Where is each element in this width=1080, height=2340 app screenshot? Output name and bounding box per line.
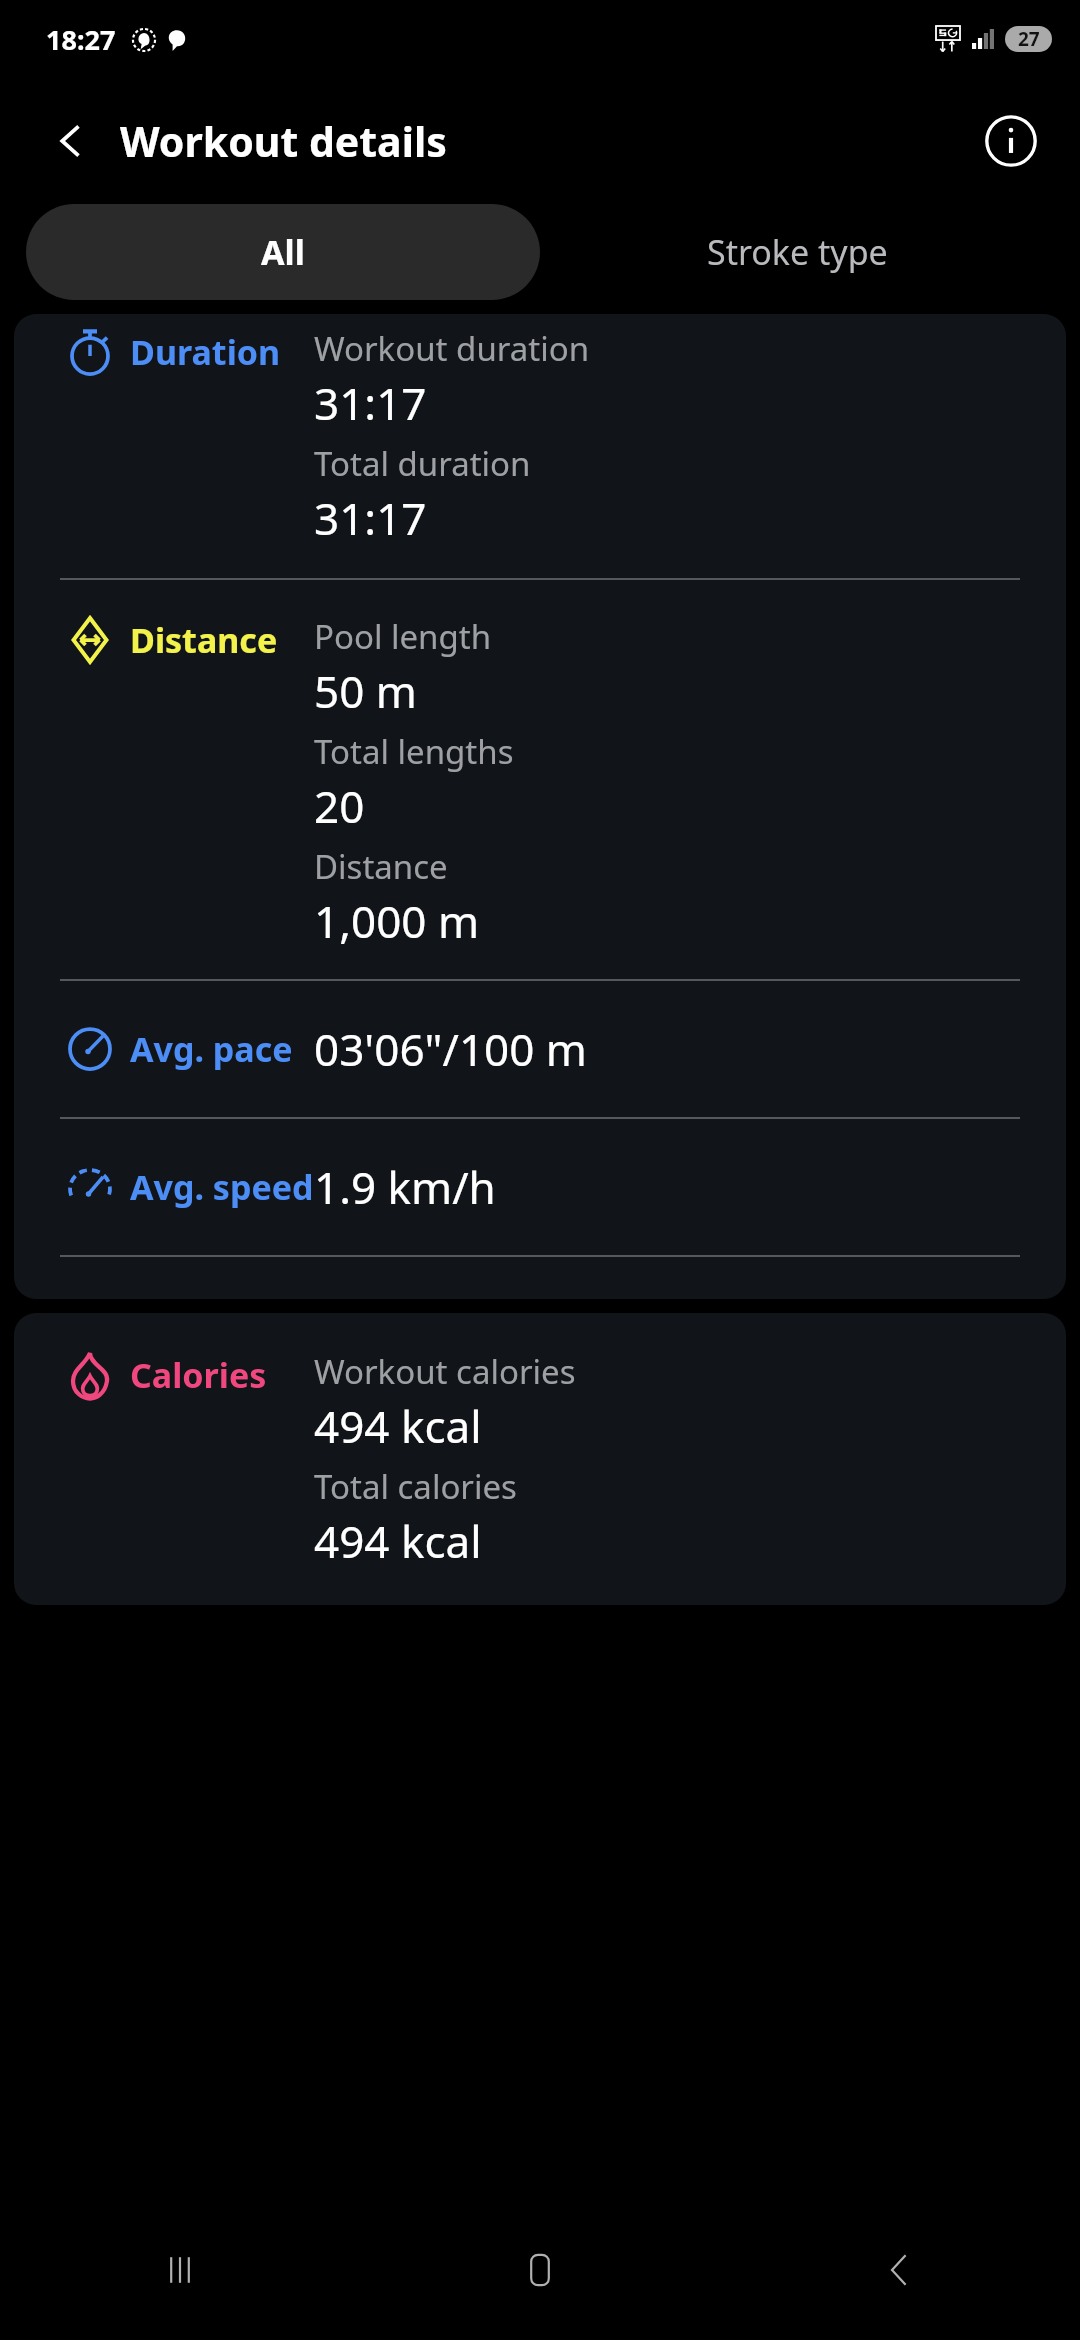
staticText: Stroke type (707, 229, 888, 275)
staticText: 494 kcal (314, 1396, 482, 1456)
staticText: Total duration (314, 441, 531, 486)
button[interactable]: Duration (14, 318, 1066, 578)
staticText: Distance (314, 844, 448, 889)
button[interactable]: Back (40, 110, 102, 172)
button[interactable]: Recents (0, 2200, 360, 2340)
staticText: Duration (130, 329, 281, 375)
staticText: 03'06"/100 m (314, 1019, 1066, 1079)
staticText: Pool length (314, 614, 492, 659)
staticText: 1,000 m (314, 891, 480, 951)
staticText: 18:27 (46, 21, 116, 58)
button[interactable]: Distance (14, 580, 1066, 979)
staticText: Avg. speed (130, 1164, 314, 1210)
button[interactable]: Info (978, 108, 1044, 174)
staticText: 31:17 (314, 373, 427, 433)
staticText: 494 kcal (314, 1511, 482, 1571)
staticText: Workout details (120, 113, 447, 169)
button[interactable]: Calories (14, 1313, 1066, 1605)
button[interactable]: Back (720, 2200, 1080, 2340)
staticText: All (261, 229, 305, 275)
staticText: Total calories (314, 1464, 517, 1509)
staticText: 1.9 km/h (314, 1157, 1066, 1217)
button[interactable]: Home (360, 2200, 720, 2340)
button[interactable]: All (26, 204, 540, 300)
staticText: Workout calories (314, 1349, 576, 1394)
staticText: Distance (130, 617, 278, 663)
staticText: Workout duration (314, 326, 590, 371)
button[interactable]: Stroke type (540, 204, 1054, 300)
button[interactable]: Avg. pace (14, 981, 1066, 1117)
button[interactable]: Avg. speed (14, 1119, 1066, 1255)
staticText: 50 m (314, 661, 417, 721)
staticText: 31:17 (314, 488, 427, 548)
staticText: Total lengths (314, 729, 514, 774)
staticText: Avg. pace (130, 1026, 293, 1072)
staticText: 27 (1018, 26, 1040, 52)
staticText: Calories (130, 1352, 267, 1398)
staticText: 20 (314, 776, 365, 836)
